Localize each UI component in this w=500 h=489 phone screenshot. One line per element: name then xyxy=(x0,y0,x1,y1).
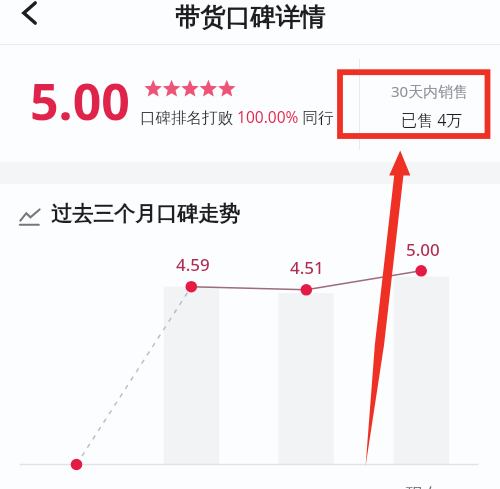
staticText: 带货口碑详情 xyxy=(175,2,325,33)
staticText: 5.00 xyxy=(30,67,130,135)
staticText: 已售 4万 xyxy=(401,109,463,131)
staticText: 4.51 xyxy=(290,256,324,279)
staticText: 30天内销售 xyxy=(391,81,469,101)
staticText: 口碑排名打败 100.00% 同行 xyxy=(140,106,334,127)
staticText: 4.59 xyxy=(176,253,210,276)
staticText: 5.00 xyxy=(406,238,440,261)
button[interactable]: Back xyxy=(8,0,52,28)
staticText: 过去三个月口碑走势 xyxy=(51,201,240,227)
staticText: 现在 xyxy=(406,484,440,489)
